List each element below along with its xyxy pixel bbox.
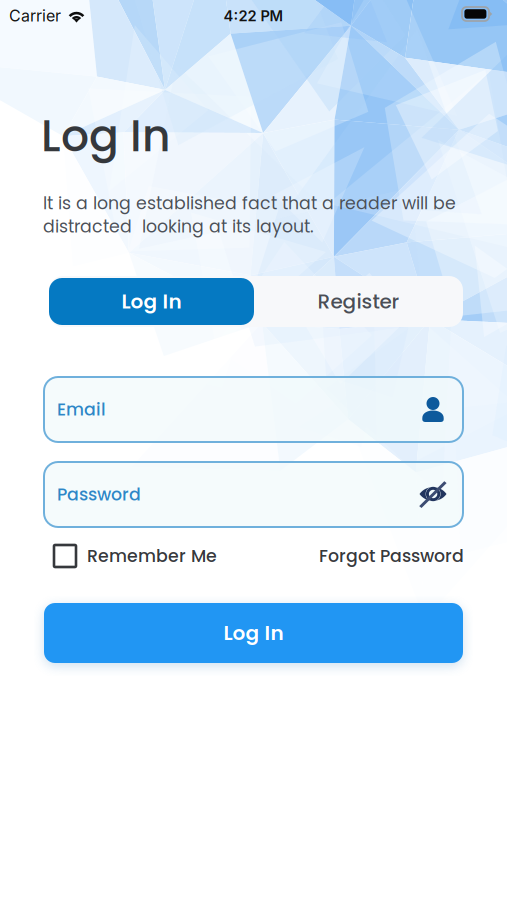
staticText: Register — [317, 287, 399, 315]
button[interactable]: Log In — [49, 278, 254, 325]
staticText: Email — [57, 397, 106, 422]
button[interactable]: Register — [256, 278, 461, 325]
staticText: It is a long established fact that a rea… — [43, 191, 456, 238]
button[interactable]: Log In — [44, 603, 463, 663]
staticText: Remember Me — [87, 544, 217, 568]
button[interactable]: Remember Me — [54, 544, 254, 568]
staticText: Forgot Password — [319, 544, 464, 568]
staticText: Log In — [223, 619, 283, 647]
staticText: Log In — [41, 105, 171, 167]
staticText: Password — [57, 482, 141, 507]
staticText: Carrier — [9, 6, 61, 25]
button[interactable]: Email — [44, 377, 463, 442]
button[interactable]: Forgot Password — [264, 544, 464, 568]
button[interactable]: Password — [44, 462, 463, 527]
staticText: Log In — [121, 287, 181, 315]
staticText: 4:22 PM — [223, 7, 283, 25]
